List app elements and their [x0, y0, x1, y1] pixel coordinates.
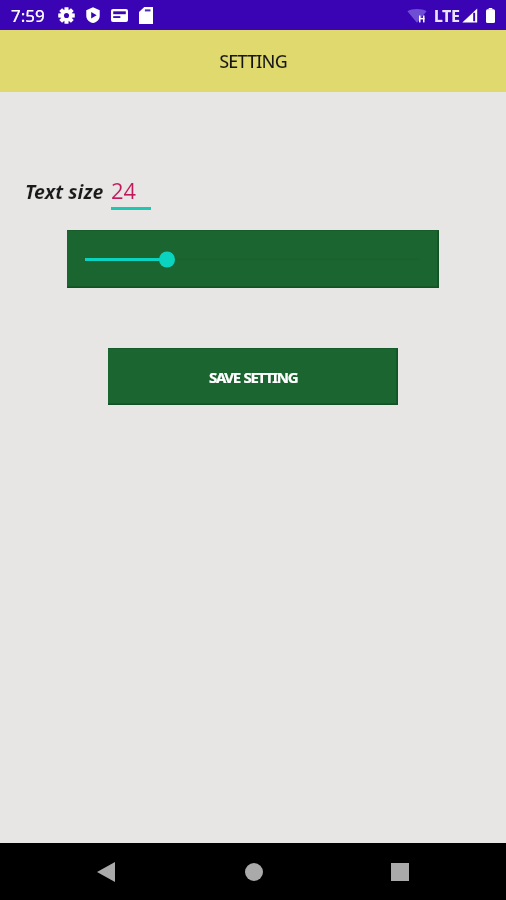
- button[interactable]: Back: [81, 847, 130, 896]
- button[interactable]: SAVE SETTING: [108, 348, 398, 405]
- button[interactable]: Recent apps: [375, 847, 424, 896]
- staticText: 24: [111, 175, 137, 205]
- staticText: SAVE SETTING: [209, 367, 298, 387]
- staticText: 7:59: [11, 4, 45, 27]
- staticText: LTE: [434, 5, 460, 26]
- staticText: SETTING: [219, 49, 287, 74]
- button[interactable]: Home: [229, 847, 278, 896]
- staticText: Text size: [25, 178, 104, 205]
- button[interactable]: Text size slider: [67, 230, 439, 288]
